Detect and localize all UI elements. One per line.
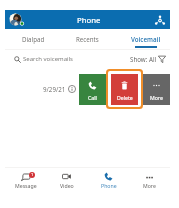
staticText: More [150,94,163,101]
staticText: Delete [117,94,133,101]
staticText: Message [15,182,37,189]
button[interactable]: Share [153,13,167,27]
staticText: Show: All [130,55,157,63]
button[interactable]: Details [66,83,77,94]
staticText: Dialpad [22,35,45,43]
button[interactable]: Delete [111,74,138,105]
button[interactable]: Recents [60,30,115,49]
button[interactable]: Voicemail [117,30,174,49]
staticText: Phone [77,15,101,26]
button[interactable]: Phone [88,168,129,192]
button[interactable]: Profile [8,12,24,28]
staticText: More [143,182,156,189]
button[interactable]: 1 [5,168,46,192]
staticText: Search voicemails [23,55,73,63]
staticText: 9/29/21 [43,85,66,93]
staticText: Phone [101,182,117,189]
staticText: Recents [76,35,99,43]
staticText: Voicemail [131,35,161,43]
staticText: 1 [31,172,34,178]
staticText: Call [88,94,97,101]
button[interactable]: Video [46,168,87,192]
button[interactable]: More [129,168,170,192]
staticText: Video [60,182,74,189]
button[interactable]: Filter [156,53,168,65]
button[interactable]: More [143,74,170,105]
button[interactable]: Dialpad [6,30,61,49]
button[interactable]: Call [79,74,106,105]
